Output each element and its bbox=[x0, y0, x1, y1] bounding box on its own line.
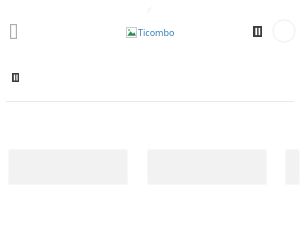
staticText: Ticombo bbox=[138, 26, 175, 38]
button[interactable]: Account bbox=[272, 19, 296, 43]
button[interactable]: Menu bbox=[2, 20, 24, 42]
button[interactable]: Ticombo bbox=[126, 26, 175, 38]
button[interactable]: Search bbox=[247, 21, 267, 41]
button[interactable] bbox=[0, 56, 300, 102]
